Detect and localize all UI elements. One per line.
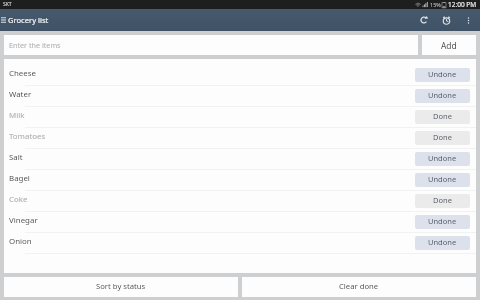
button[interactable]: Clear done bbox=[242, 277, 476, 297]
staticText: Grocery list bbox=[8, 15, 49, 25]
button[interactable]: Salt bbox=[4, 148, 476, 169]
button[interactable]: Undone bbox=[415, 89, 470, 103]
staticText: Undone bbox=[428, 153, 457, 163]
button[interactable]: Sort by status bbox=[4, 277, 238, 297]
button[interactable]: Vinegar bbox=[4, 211, 476, 232]
button[interactable]: Add bbox=[422, 35, 476, 55]
button[interactable]: Onion bbox=[4, 232, 476, 253]
staticText: Undone bbox=[428, 237, 457, 247]
button[interactable]: Refresh bbox=[413, 9, 435, 31]
button[interactable]: Done bbox=[415, 194, 470, 208]
button[interactable]: Enter the items bbox=[4, 35, 418, 55]
staticText: 12:00 PM bbox=[448, 0, 477, 9]
staticText: Salt bbox=[9, 152, 23, 163]
staticText: Bagel bbox=[9, 173, 30, 184]
button[interactable]: More options bbox=[457, 9, 479, 31]
staticText: Add bbox=[441, 40, 457, 51]
staticText: Done bbox=[433, 132, 452, 142]
staticText: Onion bbox=[9, 236, 32, 247]
staticText: Milk bbox=[9, 110, 25, 121]
button[interactable]: Coke bbox=[4, 190, 476, 211]
button[interactable]: Milk bbox=[4, 106, 476, 127]
staticText: SKT bbox=[3, 1, 12, 8]
button[interactable]: Undone bbox=[415, 215, 470, 229]
staticText: 15% bbox=[430, 1, 441, 8]
staticText: Clear done bbox=[339, 281, 379, 291]
button[interactable]: Undone bbox=[415, 68, 470, 82]
staticText: Vinegar bbox=[9, 215, 38, 226]
button[interactable]: Bagel bbox=[4, 169, 476, 190]
button[interactable]: Cheese bbox=[4, 64, 476, 85]
staticText: Water bbox=[9, 89, 32, 100]
staticText: Enter the items bbox=[9, 40, 61, 50]
button[interactable]: Navigation menu bbox=[0, 9, 6, 31]
button[interactable]: Undone bbox=[415, 173, 470, 187]
staticText: Undone bbox=[428, 69, 457, 79]
button[interactable]: Alarm bbox=[435, 9, 457, 31]
button[interactable]: Undone bbox=[415, 236, 470, 250]
staticText: Undone bbox=[428, 216, 457, 226]
staticText: Coke bbox=[9, 194, 28, 205]
button[interactable]: Done bbox=[415, 110, 470, 124]
button[interactable]: Water bbox=[4, 85, 476, 106]
staticText: Sort by status bbox=[96, 281, 146, 291]
staticText: Undone bbox=[428, 90, 457, 100]
staticText: Cheese bbox=[9, 68, 36, 79]
staticText: Undone bbox=[428, 174, 457, 184]
button[interactable]: Undone bbox=[415, 152, 470, 166]
staticText: Tomatoes bbox=[9, 131, 46, 142]
button[interactable]: Tomatoes bbox=[4, 127, 476, 148]
staticText: Done bbox=[433, 195, 452, 205]
staticText: Done bbox=[433, 111, 452, 121]
button[interactable]: Done bbox=[415, 131, 470, 145]
